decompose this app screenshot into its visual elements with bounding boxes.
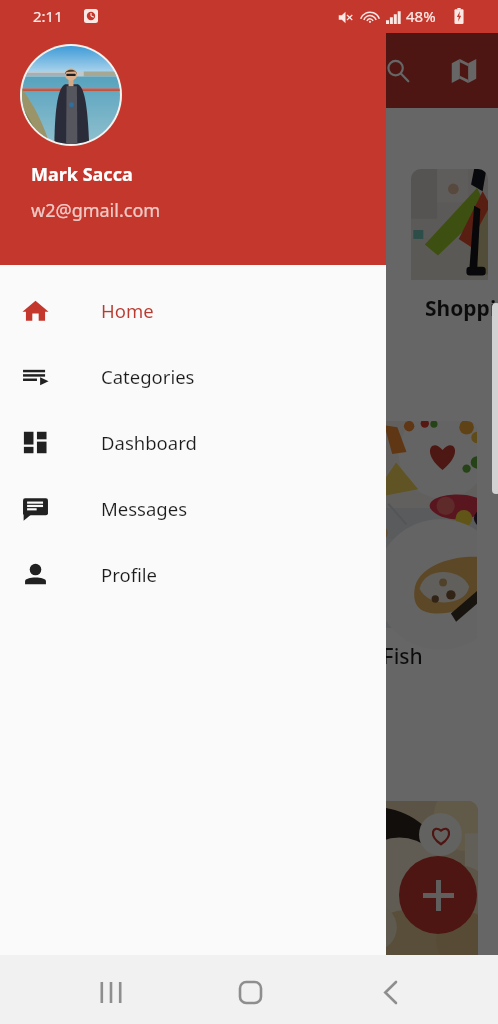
staticText: Delicious Fried Fish — [230, 642, 423, 671]
staticText: Mark Sacca — [31, 162, 133, 187]
button[interactable]: Profile — [0, 541, 386, 607]
button[interactable]: Map — [440, 47, 487, 94]
button[interactable] — [411, 169, 488, 350]
button[interactable]: Dashboard — [0, 409, 386, 475]
button[interactable]: Home — [226, 968, 274, 1016]
staticText: Categories — [101, 364, 195, 389]
staticText: w2@gmail.com — [31, 198, 161, 223]
staticText: Profile — [101, 562, 157, 587]
button[interactable]: Home — [0, 277, 386, 343]
staticText: 2:11 — [33, 6, 63, 26]
button[interactable] — [216, 421, 477, 768]
button[interactable] — [216, 801, 478, 1024]
staticText: Messages — [101, 496, 187, 521]
button[interactable]: Messages — [0, 475, 386, 541]
staticText: Pasta — [230, 977, 286, 1006]
button[interactable]: Categories — [0, 343, 386, 409]
button[interactable]: Add — [399, 856, 477, 934]
button[interactable]: Recents — [87, 968, 135, 1016]
staticText: Dashboard — [101, 430, 197, 455]
button[interactable]: Profile photo — [20, 44, 122, 146]
staticText: Shopping — [425, 294, 498, 323]
button[interactable]: Favorite — [419, 813, 462, 856]
staticText: 48% — [406, 6, 436, 26]
button[interactable]: Back — [366, 968, 414, 1016]
staticText: Home — [101, 298, 154, 323]
button[interactable]: Search — [374, 47, 421, 94]
